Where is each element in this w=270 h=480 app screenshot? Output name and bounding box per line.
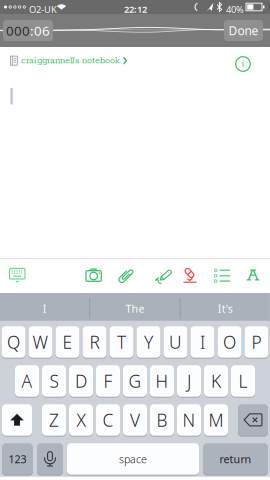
- button[interactable]: A: [238, 258, 268, 293]
- button[interactable]: D: [69, 365, 93, 397]
- button[interactable]: Z: [42, 404, 66, 436]
- button[interactable]: I: [0, 293, 89, 324]
- button[interactable]: [238, 404, 268, 436]
- staticText: W: [32, 330, 48, 353]
- staticText: Z: [49, 408, 59, 431]
- button[interactable]: [78, 258, 110, 293]
- staticText: Done: [228, 22, 258, 38]
- button[interactable]: V: [123, 404, 147, 436]
- staticText: D: [75, 369, 87, 392]
- button[interactable]: I: [190, 326, 214, 358]
- button[interactable]: C: [96, 404, 120, 436]
- button[interactable]: N: [177, 404, 201, 436]
- staticText: M: [208, 408, 223, 431]
- staticText: S: [49, 369, 58, 392]
- button[interactable]: space: [67, 443, 199, 475]
- staticText: C: [102, 408, 113, 431]
- staticText: Y: [144, 330, 153, 353]
- button[interactable]: A: [15, 365, 39, 397]
- button[interactable]: G: [123, 365, 147, 397]
- staticText: A: [246, 264, 259, 287]
- staticText: :06: [30, 22, 50, 39]
- staticText: U: [169, 330, 182, 353]
- button[interactable]: [110, 258, 142, 293]
- staticText: J: [187, 369, 191, 392]
- staticText: X: [76, 408, 85, 431]
- staticText: 22:12: [124, 3, 147, 15]
- button[interactable]: [2, 258, 33, 293]
- button[interactable]: F: [96, 365, 120, 397]
- button[interactable]: E: [55, 326, 79, 358]
- button[interactable]: S: [42, 365, 66, 397]
- staticText: R: [89, 330, 99, 353]
- staticText: i: [241, 57, 244, 69]
- button[interactable]: i: [235, 56, 251, 72]
- staticText: N: [182, 408, 195, 431]
- button[interactable]: return: [203, 443, 268, 475]
- button[interactable]: L: [231, 365, 255, 397]
- staticText: return: [219, 452, 251, 466]
- button[interactable]: craiggrannell's notebook: [0, 48, 119, 59]
- button[interactable]: B: [150, 404, 174, 436]
- staticText: 40%: [226, 3, 244, 16]
- button[interactable]: T: [109, 326, 133, 358]
- button[interactable]: Done: [224, 20, 263, 41]
- button[interactable]: [206, 258, 238, 293]
- staticText: E: [62, 330, 72, 353]
- button[interactable]: [37, 443, 63, 475]
- staticText: The: [125, 301, 144, 316]
- staticText: O: [223, 330, 236, 353]
- button[interactable]: 123: [2, 443, 33, 475]
- button[interactable]: [2, 404, 32, 436]
- button[interactable]: [174, 258, 206, 293]
- staticText: I: [200, 330, 205, 353]
- staticText: V: [130, 408, 140, 431]
- staticText: F: [103, 369, 112, 392]
- staticText: It's: [218, 301, 233, 316]
- staticText: K: [211, 369, 221, 392]
- staticText: space: [119, 452, 147, 466]
- staticText: A: [21, 369, 32, 392]
- button[interactable]: The: [90, 293, 180, 324]
- staticText: H: [155, 369, 168, 392]
- staticText: L: [238, 369, 247, 392]
- button[interactable]: U: [163, 326, 187, 358]
- button[interactable]: It's: [181, 293, 270, 324]
- staticText: I: [43, 301, 47, 316]
- button[interactable]: Q: [1, 326, 25, 358]
- staticText: G: [128, 369, 141, 392]
- staticText: 000: [6, 22, 30, 39]
- button[interactable]: X: [69, 404, 93, 436]
- staticText: Q: [7, 330, 20, 353]
- staticText: T: [117, 330, 126, 353]
- button[interactable]: O: [217, 326, 241, 358]
- button[interactable]: M: [204, 404, 228, 436]
- staticText: craiggrannell's notebook: [21, 55, 120, 66]
- staticText: P: [251, 330, 261, 353]
- button[interactable]: P: [244, 326, 268, 358]
- button[interactable]: K: [204, 365, 228, 397]
- staticText: 123: [8, 452, 26, 466]
- button[interactable]: W: [28, 326, 52, 358]
- button[interactable]: R: [82, 326, 106, 358]
- button[interactable]: H: [150, 365, 174, 397]
- staticText: B: [156, 408, 167, 431]
- button[interactable]: J: [177, 365, 201, 397]
- button[interactable]: Y: [136, 326, 160, 358]
- staticText: O2-UK: [29, 3, 57, 16]
- button[interactable]: [142, 258, 174, 293]
